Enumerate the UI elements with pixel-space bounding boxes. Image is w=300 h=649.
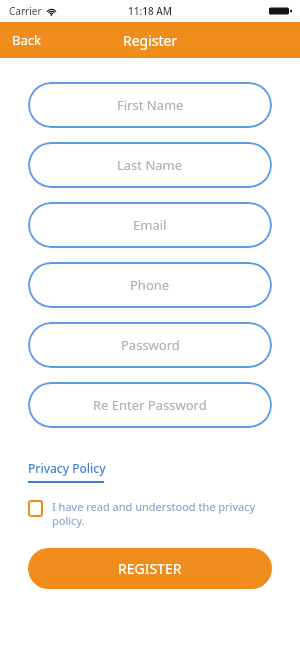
staticText: Phone [130, 276, 170, 294]
button[interactable]: Accept privacy policy [28, 499, 272, 528]
staticText: Carrier [9, 4, 42, 18]
staticText: Register [123, 31, 178, 50]
button[interactable]: Email [28, 202, 272, 248]
button[interactable]: Password [28, 322, 272, 368]
staticText: REGISTER [118, 559, 182, 578]
staticText: Email [133, 216, 167, 234]
other: Accept privacy policy [28, 500, 43, 517]
button[interactable]: Re Enter Password [28, 382, 272, 428]
staticText: First Name [117, 96, 184, 114]
staticText: I have read and understood the privacy p… [52, 499, 272, 528]
button[interactable]: REGISTER [28, 548, 272, 589]
staticText: 11:18 AM [128, 4, 172, 18]
staticText: Re Enter Password [93, 396, 207, 414]
button[interactable]: Phone [28, 262, 272, 308]
staticText: Password [121, 336, 180, 354]
button[interactable]: Back [0, 22, 53, 58]
button[interactable]: Last Name [28, 142, 272, 188]
button[interactable]: First Name [28, 82, 272, 128]
button[interactable]: Privacy Policy [28, 460, 106, 483]
staticText: Privacy Policy [28, 460, 106, 476]
staticText: Last Name [117, 156, 183, 174]
staticText: Back [12, 31, 41, 49]
